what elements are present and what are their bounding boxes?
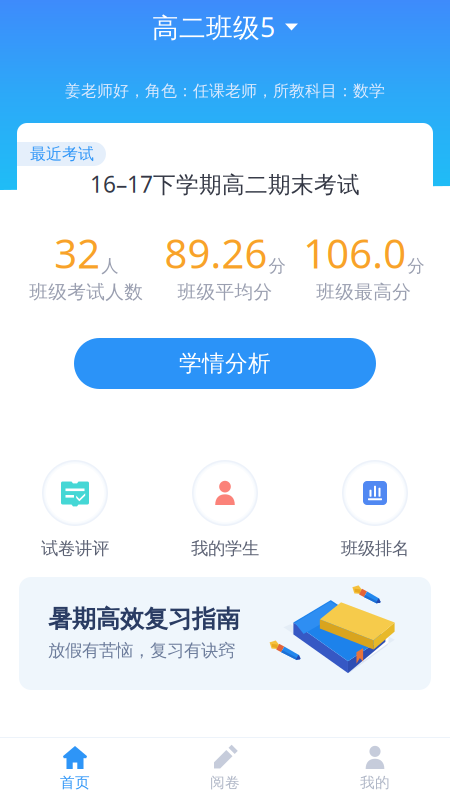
staticText: 首页 bbox=[60, 773, 90, 791]
button[interactable]: 暑期高效复习指南 bbox=[19, 577, 431, 690]
staticText: 阅卷 bbox=[210, 773, 240, 791]
staticText: 106.0 bbox=[303, 226, 406, 279]
staticText: 班级考试人数 bbox=[29, 280, 143, 303]
staticText: 班级排名 bbox=[341, 538, 409, 559]
button[interactable]: 我的学生 bbox=[150, 460, 300, 558]
staticText: 放假有苦恼，复习有诀窍 bbox=[48, 640, 235, 661]
staticText: 我的学生 bbox=[191, 538, 259, 559]
staticText: 最近考试 bbox=[30, 144, 94, 164]
button[interactable]: 班级排名 bbox=[300, 460, 450, 558]
staticText: 89.26 bbox=[164, 226, 267, 279]
button[interactable]: 阅卷 bbox=[150, 740, 300, 796]
staticText: 32 bbox=[54, 226, 100, 279]
button[interactable]: 高二班级5 bbox=[152, 0, 298, 54]
button[interactable]: 试卷讲评 bbox=[0, 460, 150, 558]
staticText: 暑期高效复习指南 bbox=[48, 604, 240, 634]
staticText: 我的 bbox=[360, 773, 390, 791]
staticText: 试卷讲评 bbox=[41, 538, 109, 559]
button[interactable]: 我的 bbox=[300, 740, 450, 796]
button[interactable]: 首页 bbox=[0, 740, 150, 796]
staticText: 分 bbox=[407, 255, 424, 277]
staticText: 分 bbox=[268, 255, 285, 277]
staticText: 高二班级5 bbox=[152, 9, 275, 45]
staticText: 16–17下学期高二期末考试 bbox=[90, 169, 360, 199]
staticText: 班级最高分 bbox=[316, 280, 411, 303]
button[interactable]: 学情分析 bbox=[74, 338, 376, 389]
staticText: 班级平均分 bbox=[177, 280, 272, 303]
staticText: 学情分析 bbox=[179, 350, 271, 377]
staticText: 人 bbox=[101, 255, 118, 277]
staticText: 姜老师好，角色：任课老师，所教科目：数学 bbox=[65, 81, 385, 101]
